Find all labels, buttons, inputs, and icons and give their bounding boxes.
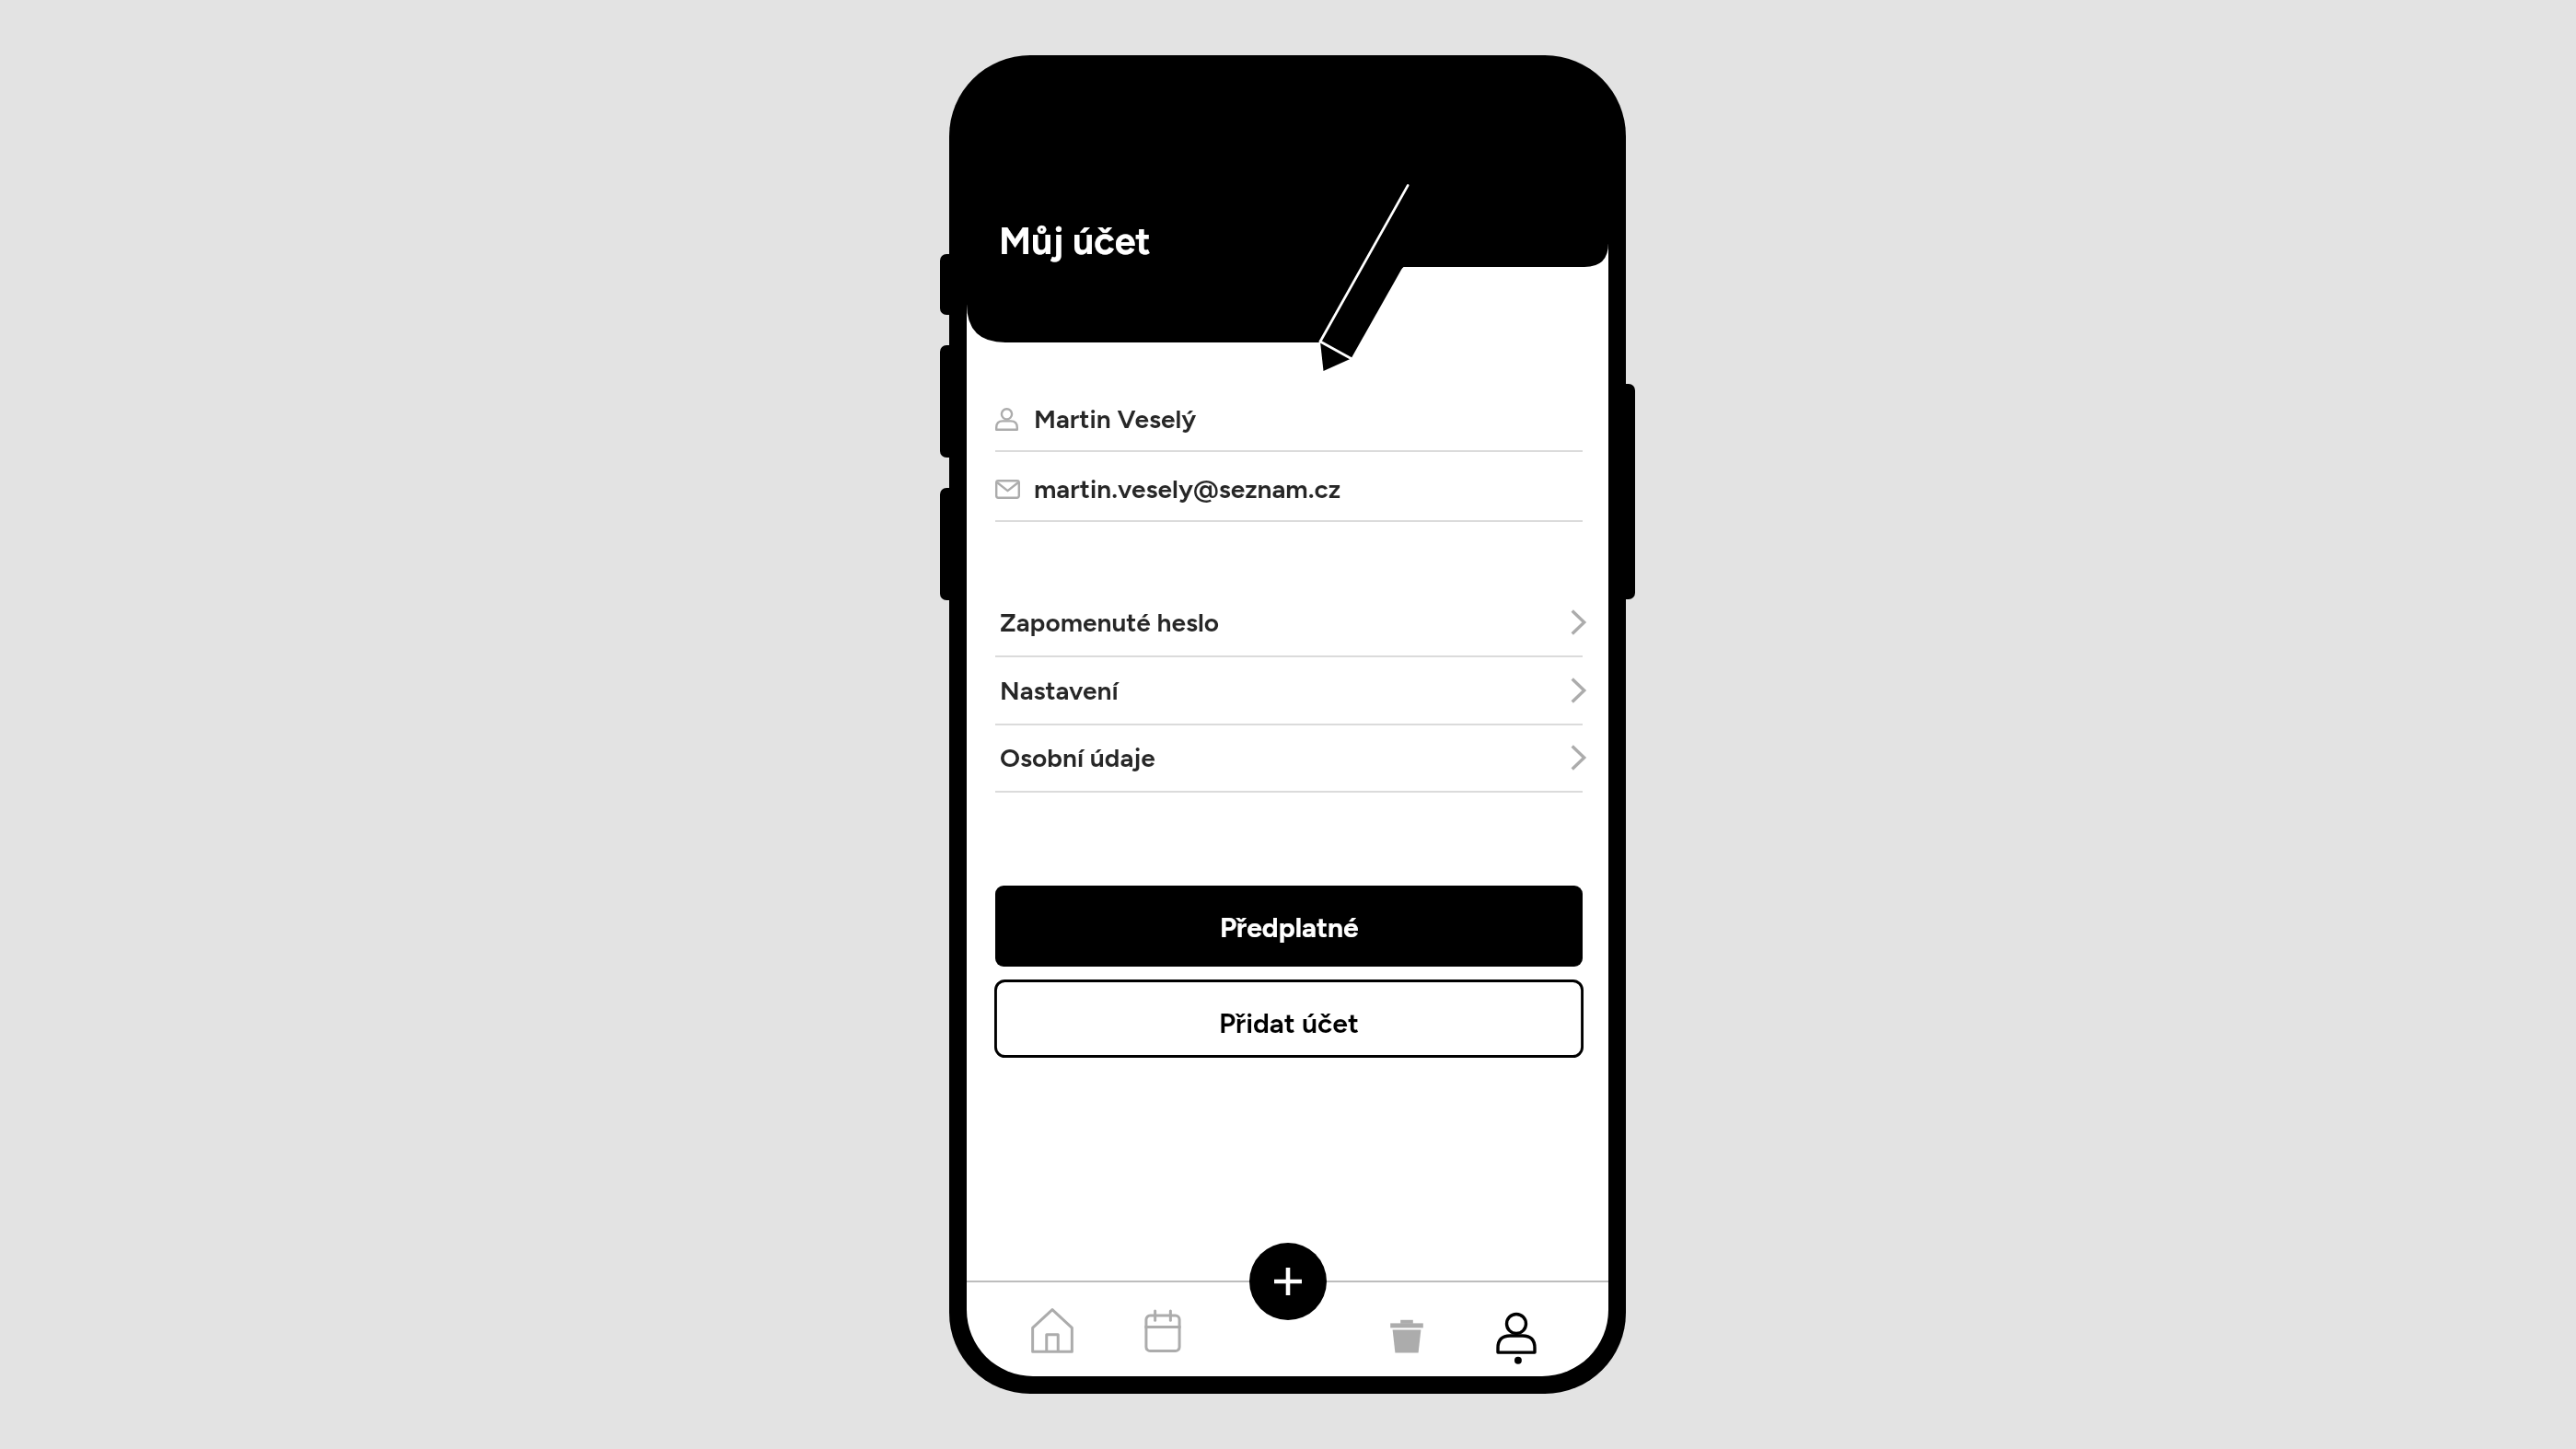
button[interactable]: Předplatné — [995, 886, 1583, 967]
staticText: Osobní údaje — [1000, 742, 1155, 773]
staticText: martin.vesely@seznam.cz — [1034, 473, 1341, 504]
staticText: Můj účet — [999, 218, 1151, 263]
button[interactable]: Martin Veselý — [995, 386, 1583, 452]
button[interactable]: Profile — [1476, 1292, 1557, 1373]
staticText: Přidat účet — [1219, 1006, 1359, 1039]
button[interactable]: Home — [1012, 1290, 1093, 1371]
staticText: Martin Veselý — [1034, 403, 1197, 435]
staticText: Zapomenuté heslo — [1000, 607, 1220, 638]
staticText: Předplatné — [1220, 910, 1359, 944]
button[interactable]: Add — [1249, 1243, 1327, 1320]
staticText: Nastavení — [1000, 675, 1119, 706]
button[interactable]: Edit profile — [1307, 180, 1418, 377]
button[interactable]: Delete — [1366, 1294, 1447, 1375]
button[interactable]: Calendar — [1122, 1291, 1203, 1372]
button[interactable]: Zapomenuté heslo — [995, 589, 1583, 655]
button[interactable]: martin.vesely@seznam.cz — [995, 456, 1583, 522]
button[interactable]: Nastavení — [995, 657, 1583, 724]
button[interactable]: Přidat účet — [994, 980, 1584, 1058]
button[interactable]: Osobní údaje — [995, 724, 1583, 791]
